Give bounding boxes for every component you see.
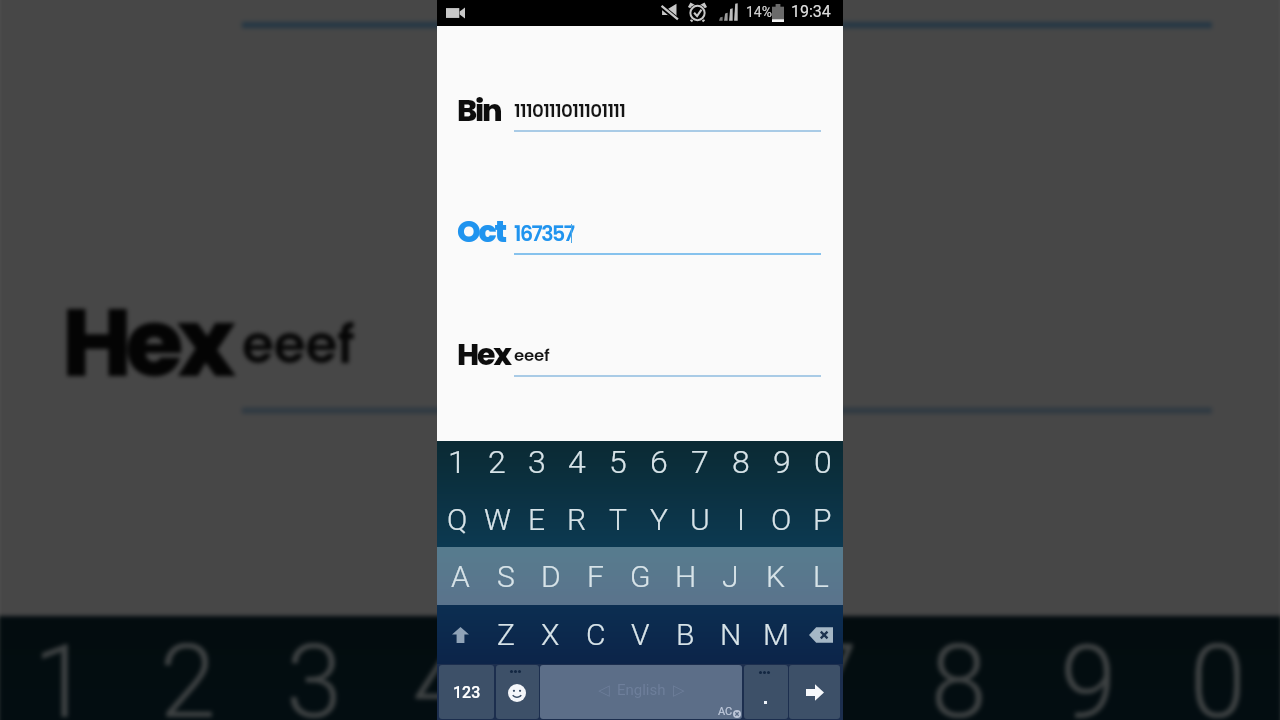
button[interactable]: 0 [1152,603,1280,720]
button[interactable]: Y [638,491,679,547]
button[interactable]: T [597,491,638,547]
staticText: M [763,617,789,652]
staticText: eeef [242,309,356,382]
button[interactable]: S [483,547,528,605]
staticText: F [587,559,604,594]
button[interactable]: Period [744,665,788,719]
button[interactable]: 3 [251,603,378,720]
button[interactable]: Enter [789,665,840,719]
staticText: 5 [609,443,627,481]
button[interactable]: 1 [437,437,477,487]
button[interactable]: 2 [477,437,517,487]
staticText: O [771,502,792,537]
staticText: 5 [542,622,599,720]
staticText: C [586,617,606,652]
button[interactable]: Backspace [798,605,843,664]
staticText: 4 [412,622,469,720]
button[interactable]: C [573,605,618,664]
staticText: 9 [1060,622,1117,720]
staticText: E [528,502,546,537]
button[interactable]: M [753,605,798,664]
staticText: X [541,617,560,652]
staticText: 3 [286,622,343,720]
button[interactable]: 9 [761,437,802,487]
staticText: 4 [568,443,586,481]
button[interactable]: Oct [437,195,843,257]
button[interactable]: 3 [517,437,557,487]
button[interactable]: D [528,547,573,605]
button[interactable]: ◁ English ▷ [540,665,742,719]
button[interactable]: 1 [0,603,125,720]
button[interactable]: N [708,605,753,664]
staticText: 19:34 [791,2,831,21]
button[interactable]: B [663,605,708,664]
button[interactable]: P [802,491,843,547]
button[interactable]: V [618,605,663,664]
button[interactable]: 5 [597,437,638,487]
staticText: I [737,502,745,537]
button[interactable]: H [663,547,708,605]
button[interactable]: Z [483,605,528,664]
button[interactable]: 8 [720,437,761,487]
button[interactable]: W [477,491,517,547]
button[interactable]: Hex [437,318,843,380]
button[interactable]: Oct [0,0,1280,34]
staticText: P [813,502,832,537]
button[interactable]: 8 [893,603,1022,720]
staticText: 6 [672,622,728,720]
button[interactable]: 4 [378,603,504,720]
button[interactable]: E [517,491,557,547]
button[interactable]: K [753,547,798,605]
button[interactable]: 123 [439,665,494,719]
staticText: Oct [457,211,505,253]
button[interactable]: Bin [437,74,843,136]
staticText: 3 [528,443,546,481]
staticText: 123 [453,683,481,702]
button[interactable]: Emoji [496,665,539,719]
button[interactable]: 0 [802,437,843,487]
button[interactable]: 7 [763,603,893,720]
button[interactable]: 2 [125,603,251,720]
staticText: R [567,502,587,537]
button[interactable]: Shift [437,605,483,664]
button[interactable]: 4 [557,437,597,487]
button[interactable]: 6 [638,437,679,487]
button[interactable]: 5 [504,603,634,720]
button[interactable]: 9 [1022,603,1152,720]
staticText: G [630,559,651,594]
button[interactable]: I [720,491,761,547]
button[interactable]: R [557,491,597,547]
button[interactable]: J [708,547,753,605]
staticText: 0 [814,443,832,481]
button[interactable]: 6 [634,603,763,720]
staticText: 2 [488,443,506,481]
button[interactable]: O [761,491,802,547]
button[interactable]: G [618,547,663,605]
button[interactable]: L [798,547,843,605]
staticText: B [676,617,695,652]
staticText: 167357 [514,219,574,248]
staticText: N [720,617,742,652]
button[interactable]: 7 [679,437,720,487]
staticText: U [690,502,710,537]
staticText: Z [497,617,515,652]
staticText: S [497,559,515,594]
staticText: Hex [457,334,511,376]
staticText: AC [718,705,733,718]
staticText: Q [447,502,468,537]
staticText: J [722,559,739,594]
button[interactable]: Q [437,491,477,547]
staticText: V [631,617,650,652]
staticText: 1 [33,622,90,720]
button[interactable]: Hex [0,227,1280,423]
button[interactable]: F [573,547,618,605]
button[interactable]: A [437,547,483,605]
staticText: D [541,559,561,594]
staticText: H [675,559,697,594]
staticText: ◁ English ▷ [598,681,685,699]
staticText: 14% [746,4,772,20]
button[interactable]: X [528,605,573,664]
button[interactable]: U [679,491,720,547]
